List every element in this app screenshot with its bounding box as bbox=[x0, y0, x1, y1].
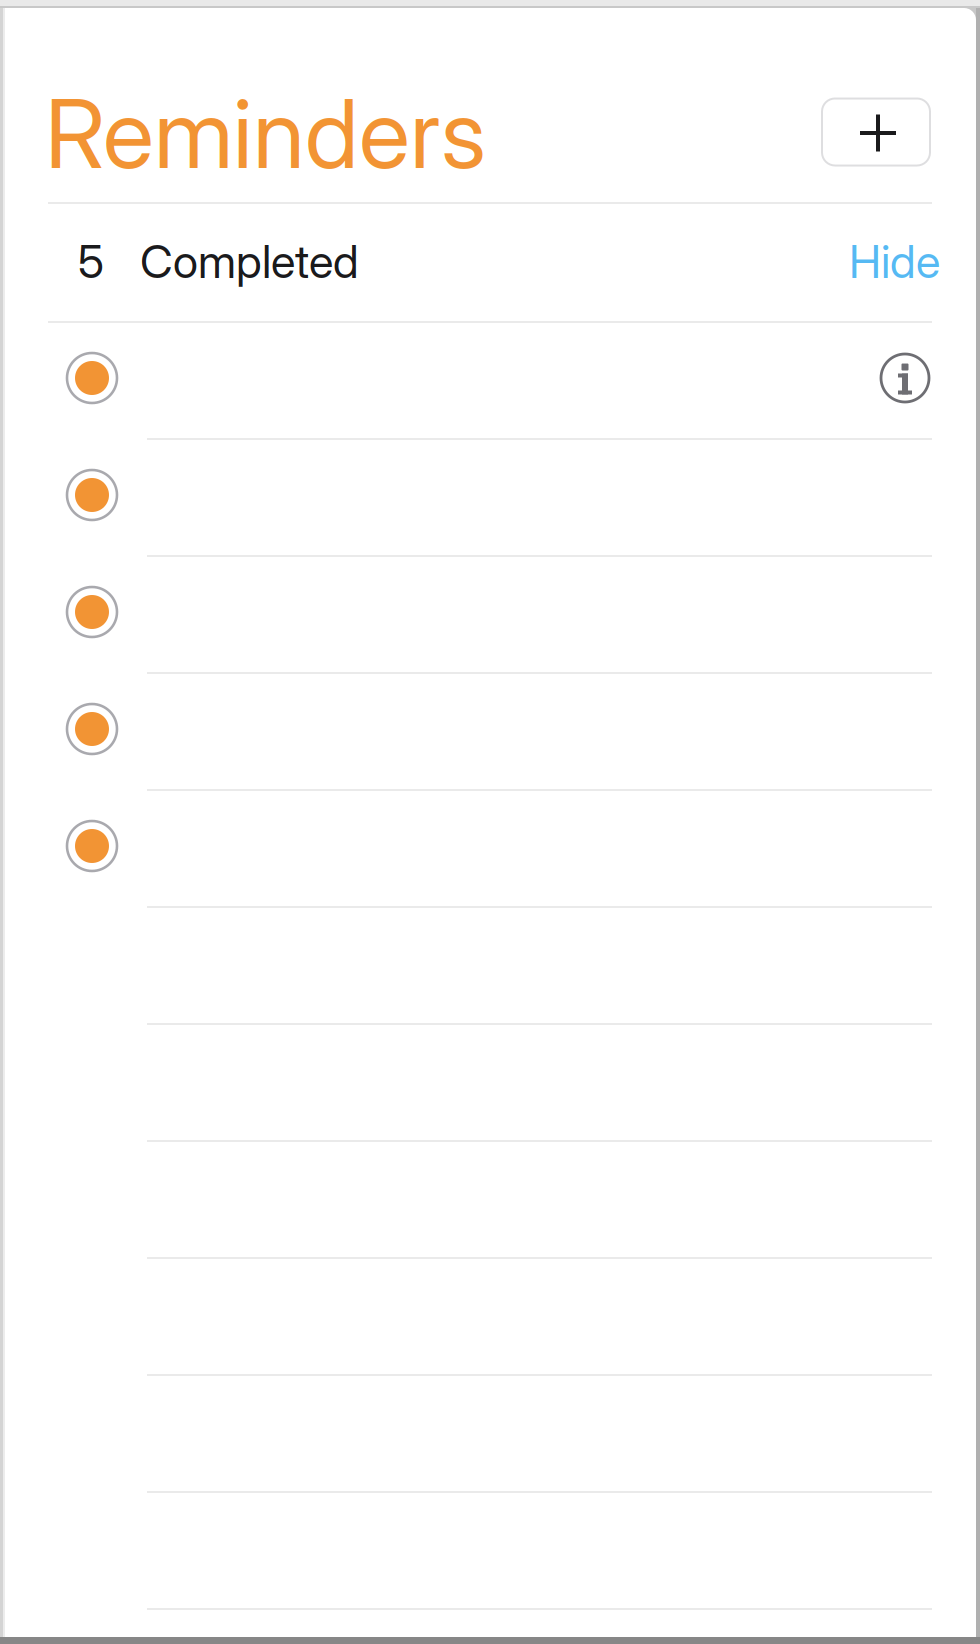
staticText: Hide bbox=[849, 234, 940, 289]
button[interactable]: Mark as not completed bbox=[65, 702, 119, 756]
button[interactable]: Mark as not completed bbox=[65, 819, 119, 873]
button[interactable]: Mark as not completed bbox=[65, 585, 119, 639]
button[interactable]: New Reminder bbox=[822, 98, 930, 165]
button[interactable]: Mark as not completed bbox=[65, 468, 119, 522]
button[interactable]: Details bbox=[880, 353, 930, 403]
button[interactable]: Hide bbox=[849, 234, 940, 289]
staticText: Completed bbox=[140, 234, 359, 289]
staticText: Reminders bbox=[45, 76, 486, 191]
button[interactable]: Mark as not completed bbox=[65, 351, 119, 405]
staticText: 5 bbox=[78, 234, 104, 289]
